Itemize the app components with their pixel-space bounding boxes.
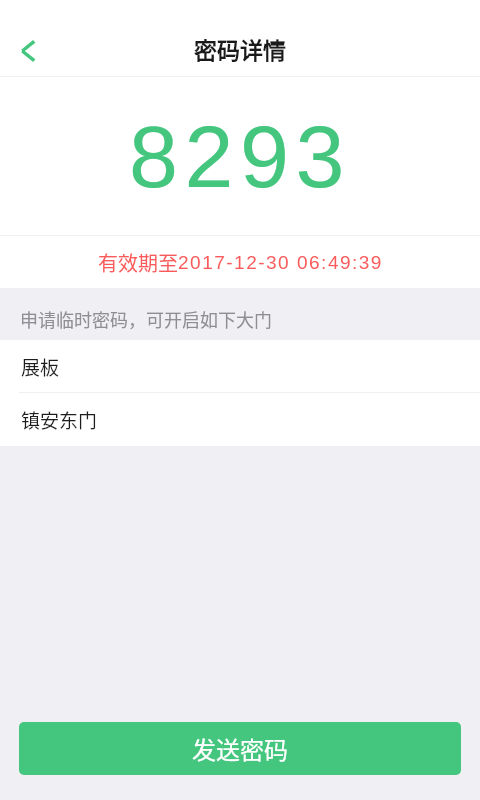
- button[interactable]: Back: [0, 24, 56, 77]
- button[interactable]: 展板: [0, 340, 480, 393]
- staticText: 8293: [129, 107, 352, 205]
- staticText: 申请临时密码，可开启如下大门: [20, 306, 272, 332]
- button[interactable]: 镇安东门: [0, 393, 480, 446]
- staticText: 发送密码: [192, 731, 288, 766]
- staticText: 镇安东门: [21, 406, 98, 434]
- staticText: 密码详情: [194, 32, 286, 65]
- staticText: 2017-12-30 06:49:39: [178, 252, 383, 273]
- button[interactable]: 发送密码: [19, 722, 461, 775]
- staticText: 展板: [21, 353, 60, 381]
- staticText: 有效期至: [98, 248, 178, 277]
